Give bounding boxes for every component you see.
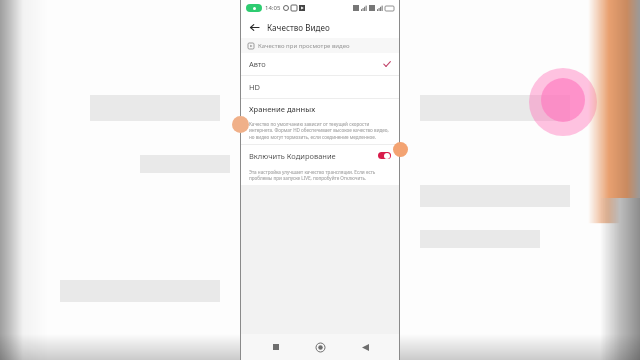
staticText: Авто	[249, 59, 266, 69]
button[interactable]: Toggle encoding	[378, 152, 391, 159]
staticText: 14:05	[265, 4, 281, 12]
button[interactable]: Авто	[240, 53, 400, 75]
staticText: HD	[249, 82, 261, 92]
staticText: Качество при просмотре видео	[258, 42, 350, 50]
button[interactable]: Home	[311, 338, 329, 356]
button[interactable]: Recents	[267, 338, 285, 356]
button[interactable]: Back	[356, 338, 374, 356]
button[interactable]: Включить Кодирование	[240, 145, 400, 166]
button[interactable]: HD	[240, 76, 400, 98]
staticText: Хранение данных	[249, 104, 316, 114]
staticText: Включить Кодирование	[249, 151, 336, 161]
button[interactable]: Back	[247, 20, 261, 34]
staticText: Качество Видео	[267, 22, 330, 33]
staticText: Качество по умолчанию зависит от текущей…	[249, 121, 389, 140]
staticText: Эта настройка улучшает качество трансляц…	[249, 169, 376, 181]
